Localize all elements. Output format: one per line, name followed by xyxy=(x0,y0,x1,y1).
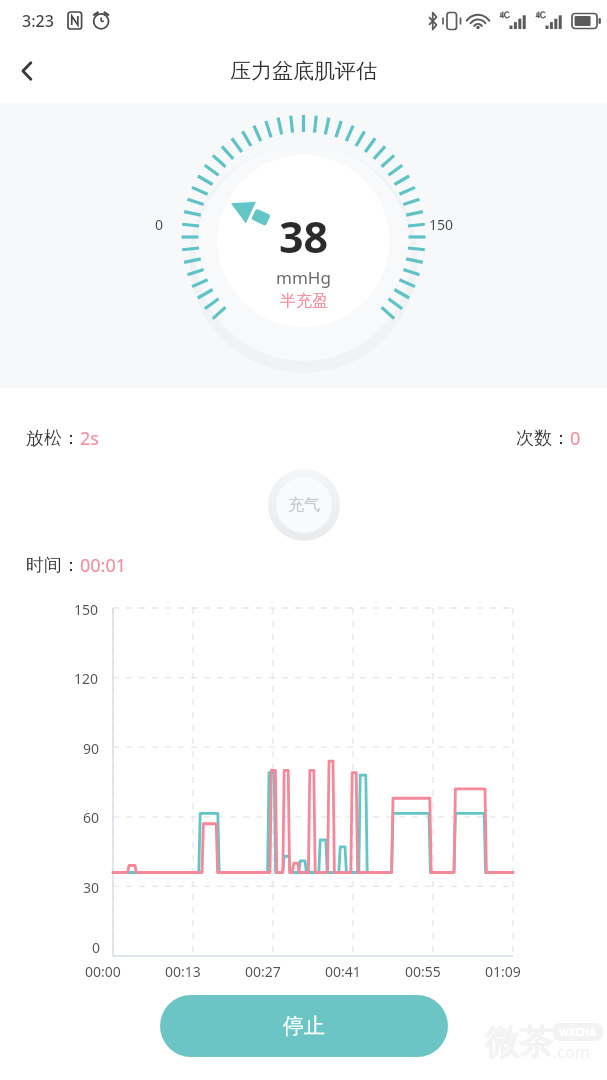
staticText: 00:00 xyxy=(85,962,121,981)
staticText: .com xyxy=(553,1041,590,1063)
staticText: 00:55 xyxy=(405,962,441,981)
staticText: 150 xyxy=(429,215,454,234)
staticText: 00:41 xyxy=(325,962,361,981)
button[interactable]: 停止 xyxy=(160,995,448,1057)
staticText: 01:09 xyxy=(485,962,521,981)
button[interactable]: 充气 xyxy=(268,469,340,541)
staticText: 0 xyxy=(92,938,101,957)
staticText: WXCHA xyxy=(559,1025,597,1039)
staticText: 0 xyxy=(155,215,164,234)
staticText: 充气 xyxy=(288,495,320,515)
staticText: 微茶 xyxy=(485,1021,553,1064)
staticText: 150 xyxy=(74,600,99,619)
staticText: 00:27 xyxy=(245,962,281,981)
staticText: 60 xyxy=(83,808,100,827)
staticText: 压力盆底肌评估 xyxy=(230,58,377,84)
staticText: 30 xyxy=(83,878,100,897)
staticText: 00:13 xyxy=(165,962,201,981)
staticText: 38 xyxy=(279,207,329,266)
staticText: 放松： xyxy=(26,427,80,450)
staticText: mmHg xyxy=(276,266,331,289)
staticText: 2s xyxy=(80,426,99,451)
button[interactable]: Back xyxy=(4,48,50,94)
staticText: 120 xyxy=(74,669,99,688)
staticText: 3:23 xyxy=(22,10,54,32)
staticText: 90 xyxy=(83,739,100,758)
staticText: 次数： xyxy=(516,427,570,450)
staticText: 停止 xyxy=(283,1013,325,1039)
staticText: 00:01 xyxy=(80,553,127,578)
staticText: 时间： xyxy=(26,554,80,577)
staticText: 半充盈 xyxy=(280,291,328,311)
staticText: 0 xyxy=(570,426,581,451)
